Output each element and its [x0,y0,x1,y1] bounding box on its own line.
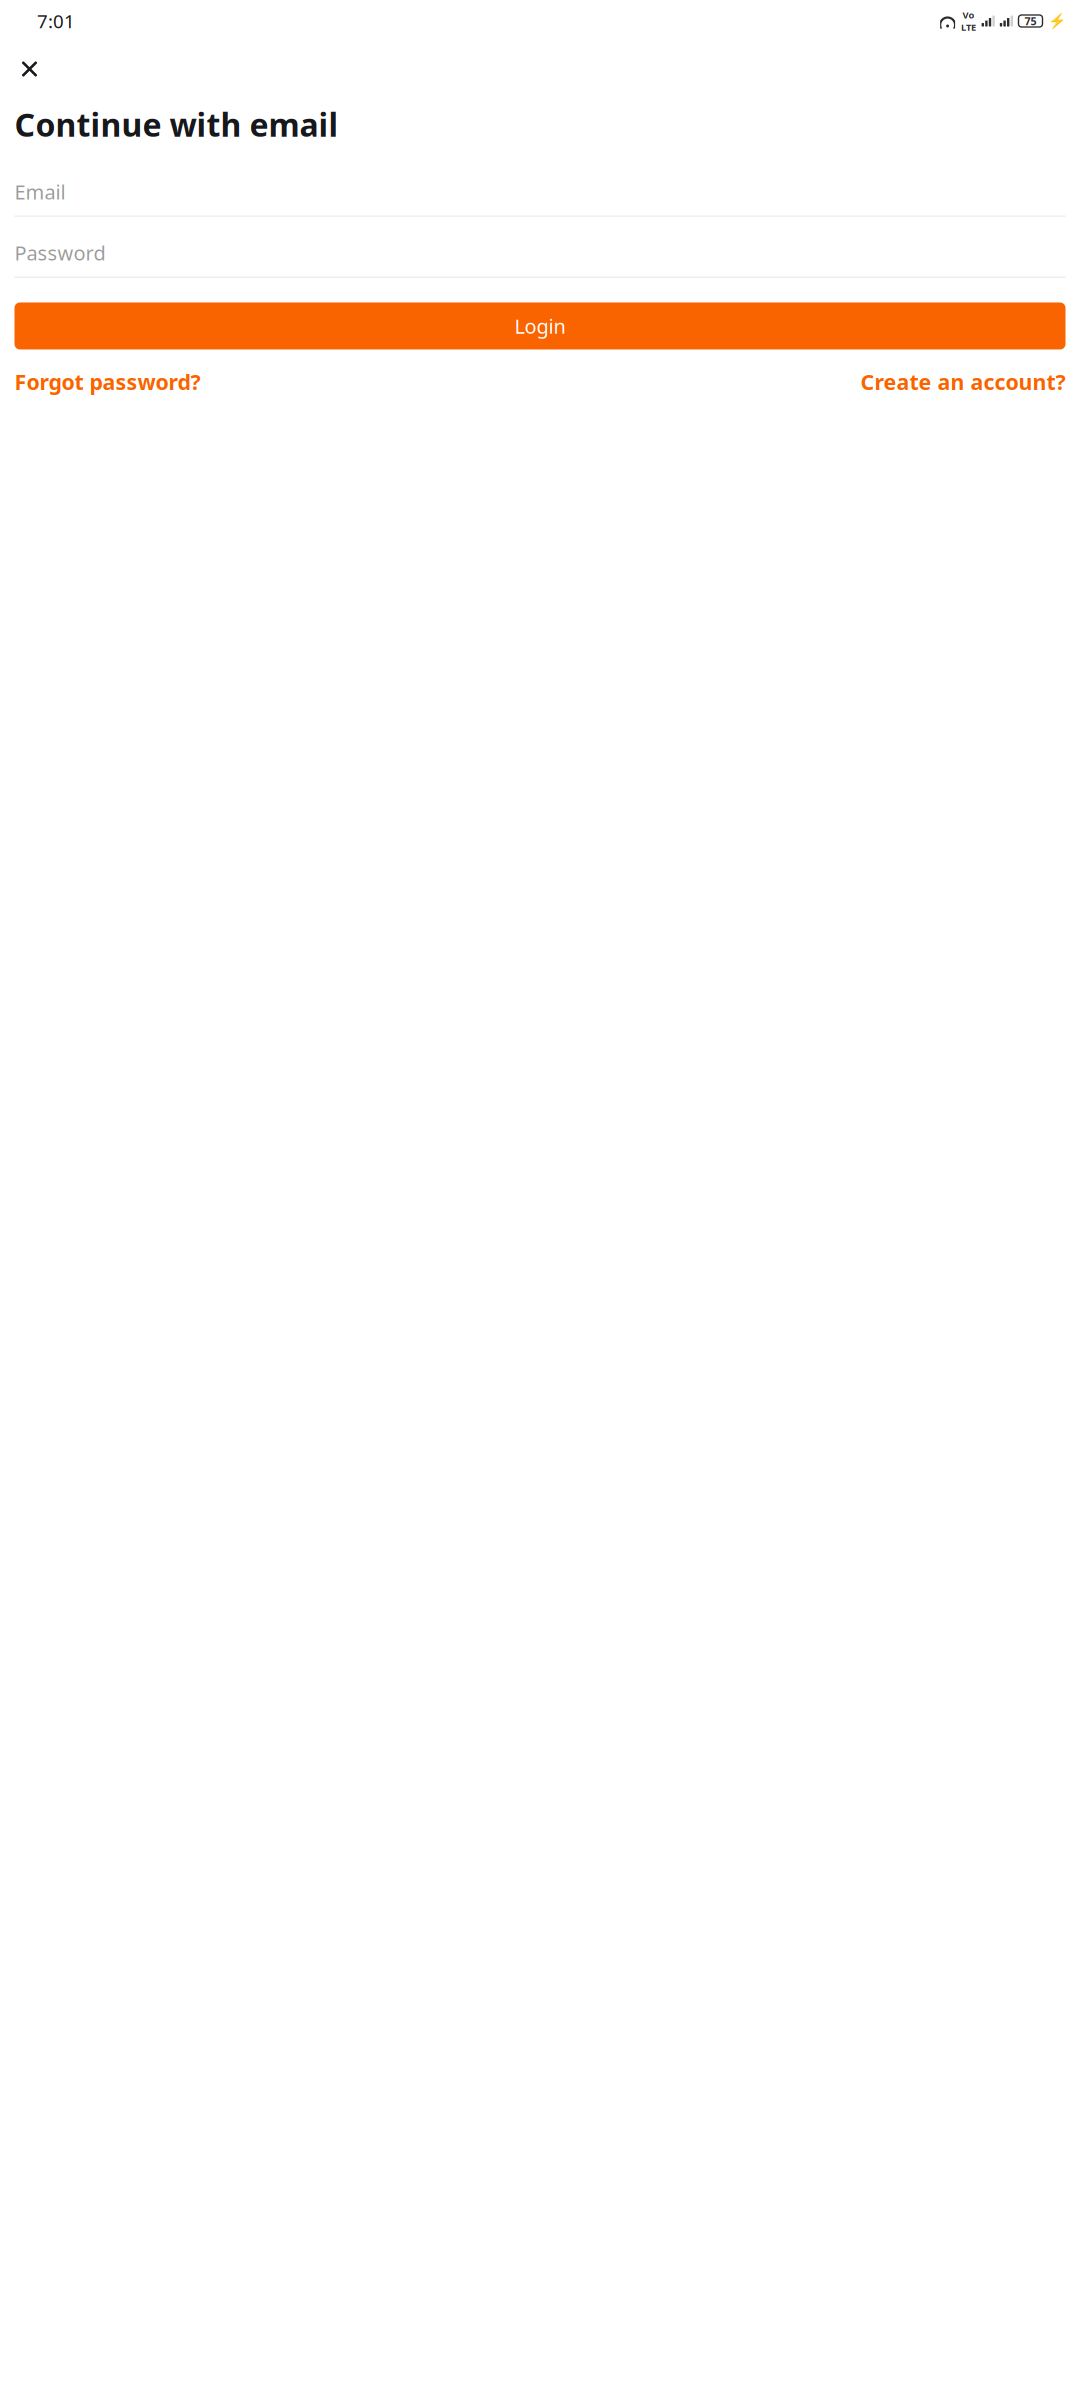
button[interactable]: Forgot password? [14,367,200,396]
button[interactable]: Login [14,302,1065,349]
staticText: 7:01 [37,9,75,33]
button[interactable]: Create an account? [860,367,1065,396]
staticText: Password [14,239,105,266]
staticText: LTE [961,21,976,33]
staticText: Email [14,178,65,205]
staticText: Forgot password? [14,367,200,396]
staticText: ⚡ [1048,13,1066,29]
button[interactable]: Close [7,47,51,91]
staticText: 75 [1024,14,1036,28]
staticText: Continue with email [14,103,338,145]
staticText: Login [514,313,565,339]
staticText: Vo [963,9,975,21]
staticText: Create an account? [860,367,1065,396]
